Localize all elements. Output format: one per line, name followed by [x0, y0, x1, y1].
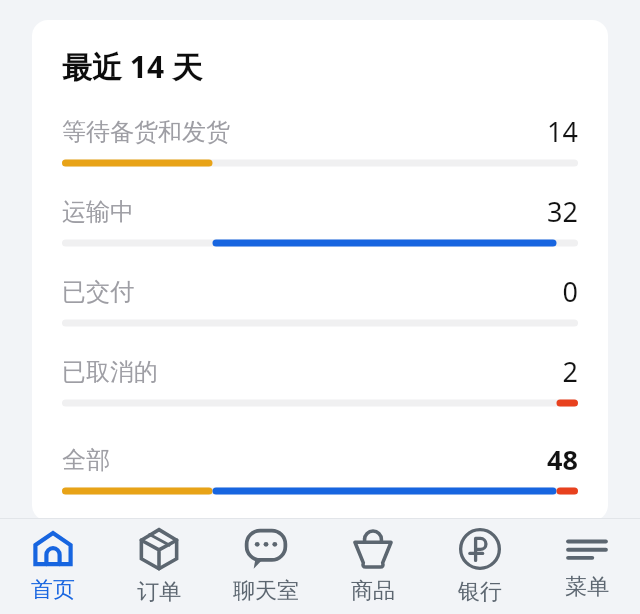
staticText: 首页: [31, 576, 75, 604]
staticText: 订单: [137, 578, 181, 606]
button[interactable]: 银行: [426, 519, 533, 614]
staticText: 已取消的: [62, 357, 158, 387]
button[interactable]: 全部: [62, 441, 578, 495]
staticText: 最近 14 天: [62, 46, 202, 87]
button[interactable]: 已交付: [62, 273, 578, 327]
button[interactable]: 菜单: [533, 519, 640, 614]
button[interactable]: 等待备货和发货: [62, 113, 578, 167]
staticText: 银行: [458, 578, 502, 606]
button[interactable]: 运输中: [62, 193, 578, 247]
button[interactable]: 订单: [106, 519, 212, 614]
button[interactable]: 首页: [0, 519, 106, 614]
button[interactable]: 已取消的: [62, 353, 578, 407]
button[interactable]: 聊天室: [212, 519, 319, 614]
staticText: 0: [562, 273, 578, 310]
staticText: 运输中: [62, 197, 134, 227]
staticText: 14: [547, 113, 578, 150]
button[interactable]: 商品: [319, 519, 426, 614]
staticText: 等待备货和发货: [62, 117, 230, 147]
staticText: 32: [547, 193, 578, 230]
staticText: 菜单: [565, 573, 609, 601]
staticText: 商品: [351, 577, 395, 605]
staticText: 聊天室: [233, 577, 299, 605]
staticText: 48: [547, 441, 578, 478]
staticText: 全部: [62, 445, 110, 475]
staticText: 2: [562, 353, 578, 390]
staticText: 已交付: [62, 277, 134, 307]
